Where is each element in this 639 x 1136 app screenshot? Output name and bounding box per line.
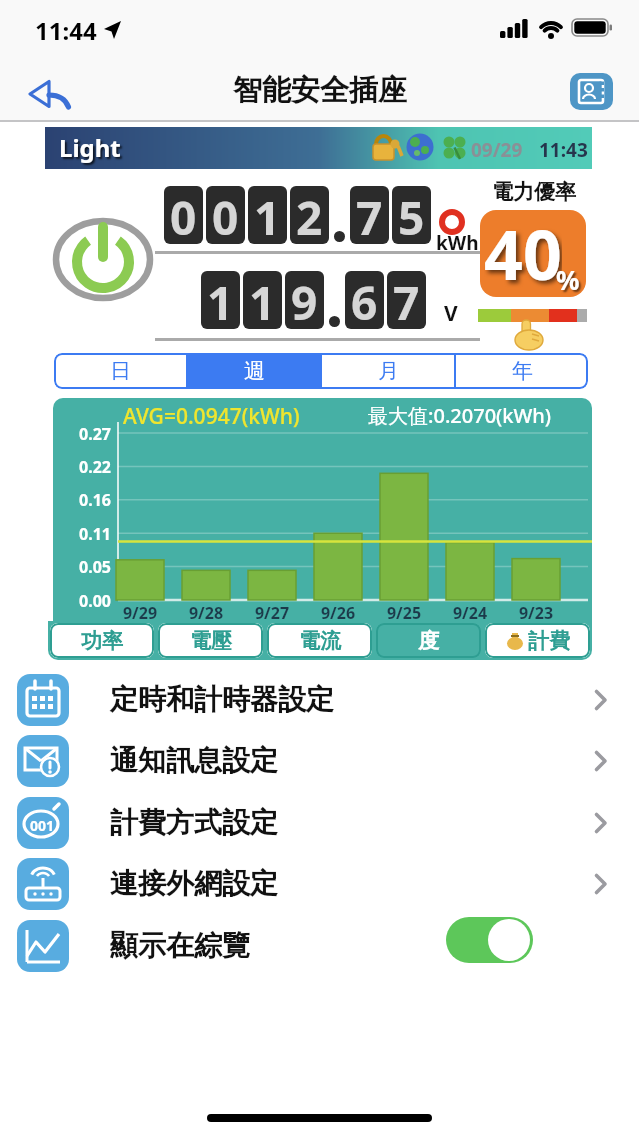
staticText: 0.22 (61, 456, 111, 478)
staticText: 0.16 (61, 489, 111, 511)
staticText: 9 (291, 271, 318, 329)
staticText: % (556, 262, 580, 297)
staticText: 9/26 (313, 602, 363, 621)
staticText: 定時和計時器設定 (110, 682, 334, 717)
button[interactable]: 通知訊息設定 (0, 730, 639, 791)
staticText: kWh (436, 230, 479, 256)
button[interactable] (446, 917, 533, 963)
button[interactable]: 連接外網設定 (0, 853, 639, 914)
button[interactable]: 年 (456, 353, 588, 389)
staticText: 9/23 (511, 602, 561, 621)
staticText: 9/29 (115, 602, 165, 621)
staticText: 1 (254, 186, 281, 244)
staticText: 1 (249, 271, 276, 329)
staticText: 電力優率 (481, 179, 587, 205)
staticText: 顯示在綜覽 (110, 928, 250, 963)
button[interactable] (18, 66, 82, 118)
staticText: 通知訊息設定 (110, 743, 278, 778)
staticText: 001 (30, 816, 55, 835)
staticText: 連接外網設定 (110, 866, 278, 901)
staticText: 40 (484, 210, 562, 294)
staticText: 1 (207, 271, 234, 329)
button[interactable]: 月 (322, 353, 454, 389)
staticText: 日 (110, 358, 131, 384)
staticText: 9/25 (379, 602, 429, 621)
button[interactable]: 功率 (50, 623, 154, 658)
staticText: 月 (378, 358, 399, 384)
staticText: 功率 (81, 628, 123, 654)
staticText: 7 (356, 186, 383, 244)
button[interactable]: 電流 (267, 623, 372, 658)
staticText: 0.11 (61, 523, 111, 545)
staticText: 09/29 (471, 137, 523, 163)
staticText: AVG=0.0947(kWh) (123, 402, 300, 431)
button[interactable]: 電壓 (158, 623, 263, 658)
staticText: 6 (351, 271, 378, 329)
staticText: 0 (170, 186, 197, 244)
button[interactable]: 計費 (485, 623, 590, 658)
button[interactable]: 顯示在綜覽 (0, 915, 639, 976)
staticText: 度 (418, 628, 439, 654)
staticText: 5 (398, 186, 425, 244)
staticText: 最大值:0.2070(kWh) (368, 402, 552, 429)
staticText: 年 (512, 358, 533, 384)
staticText: 0.00 (61, 590, 111, 612)
staticText: 0.05 (61, 556, 111, 578)
staticText: 智能安全插座 (170, 72, 470, 109)
staticText: 0.27 (61, 423, 111, 445)
staticText: 7 (393, 271, 420, 329)
staticText: 9/28 (181, 602, 231, 621)
staticText: 11:43 (539, 137, 588, 163)
staticText: 2 (296, 186, 323, 244)
staticText: 計費 (528, 628, 570, 654)
button[interactable] (570, 73, 613, 110)
staticText: 電壓 (190, 628, 232, 654)
button[interactable]: 定時和計時器設定 (0, 669, 639, 730)
button[interactable]: 週 (188, 353, 320, 389)
button[interactable]: 度 (376, 623, 481, 658)
button[interactable]: 日 (54, 353, 186, 389)
staticText: 11:44 (35, 14, 97, 47)
staticText: Light (59, 131, 121, 164)
staticText: 0 (212, 186, 239, 244)
button[interactable]: 001 (0, 792, 639, 853)
staticText: 9/24 (445, 602, 495, 621)
staticText: 週 (244, 358, 265, 384)
staticText: 電流 (299, 628, 341, 654)
staticText: 9/27 (247, 602, 297, 621)
staticText: V (444, 299, 458, 328)
staticText: 計費方式設定 (110, 805, 278, 840)
button[interactable] (50, 215, 156, 305)
